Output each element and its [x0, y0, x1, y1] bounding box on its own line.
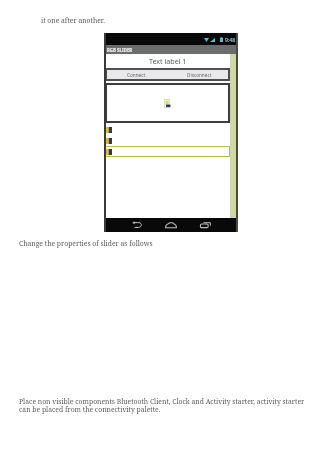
staticText: Connect — [127, 72, 146, 78]
button[interactable] — [105, 124, 230, 135]
button[interactable]: Disconnect — [168, 68, 230, 81]
button[interactable] — [105, 146, 230, 157]
staticText: Disconnect — [187, 72, 212, 78]
button[interactable]: Connect — [105, 68, 167, 81]
staticText: it one after another. — [41, 16, 105, 25]
button[interactable]: Back — [126, 220, 148, 230]
button[interactable]: Recents — [194, 220, 216, 230]
staticText: Change the properties of slider as follo… — [19, 239, 153, 248]
staticText: Place non visible components Bluetooth C… — [19, 397, 305, 414]
staticText: 9:48 — [225, 36, 236, 43]
button[interactable] — [105, 135, 230, 146]
staticText: Text label 1 — [149, 56, 187, 66]
button[interactable]: Home — [160, 220, 182, 230]
staticText: RGB SLIDER — [107, 47, 133, 53]
